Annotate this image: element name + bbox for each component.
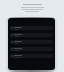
button[interactable]	[10, 33, 53, 37]
button[interactable]	[10, 54, 53, 58]
button[interactable]	[10, 40, 53, 44]
button[interactable]	[10, 47, 53, 51]
button[interactable]	[10, 26, 53, 30]
